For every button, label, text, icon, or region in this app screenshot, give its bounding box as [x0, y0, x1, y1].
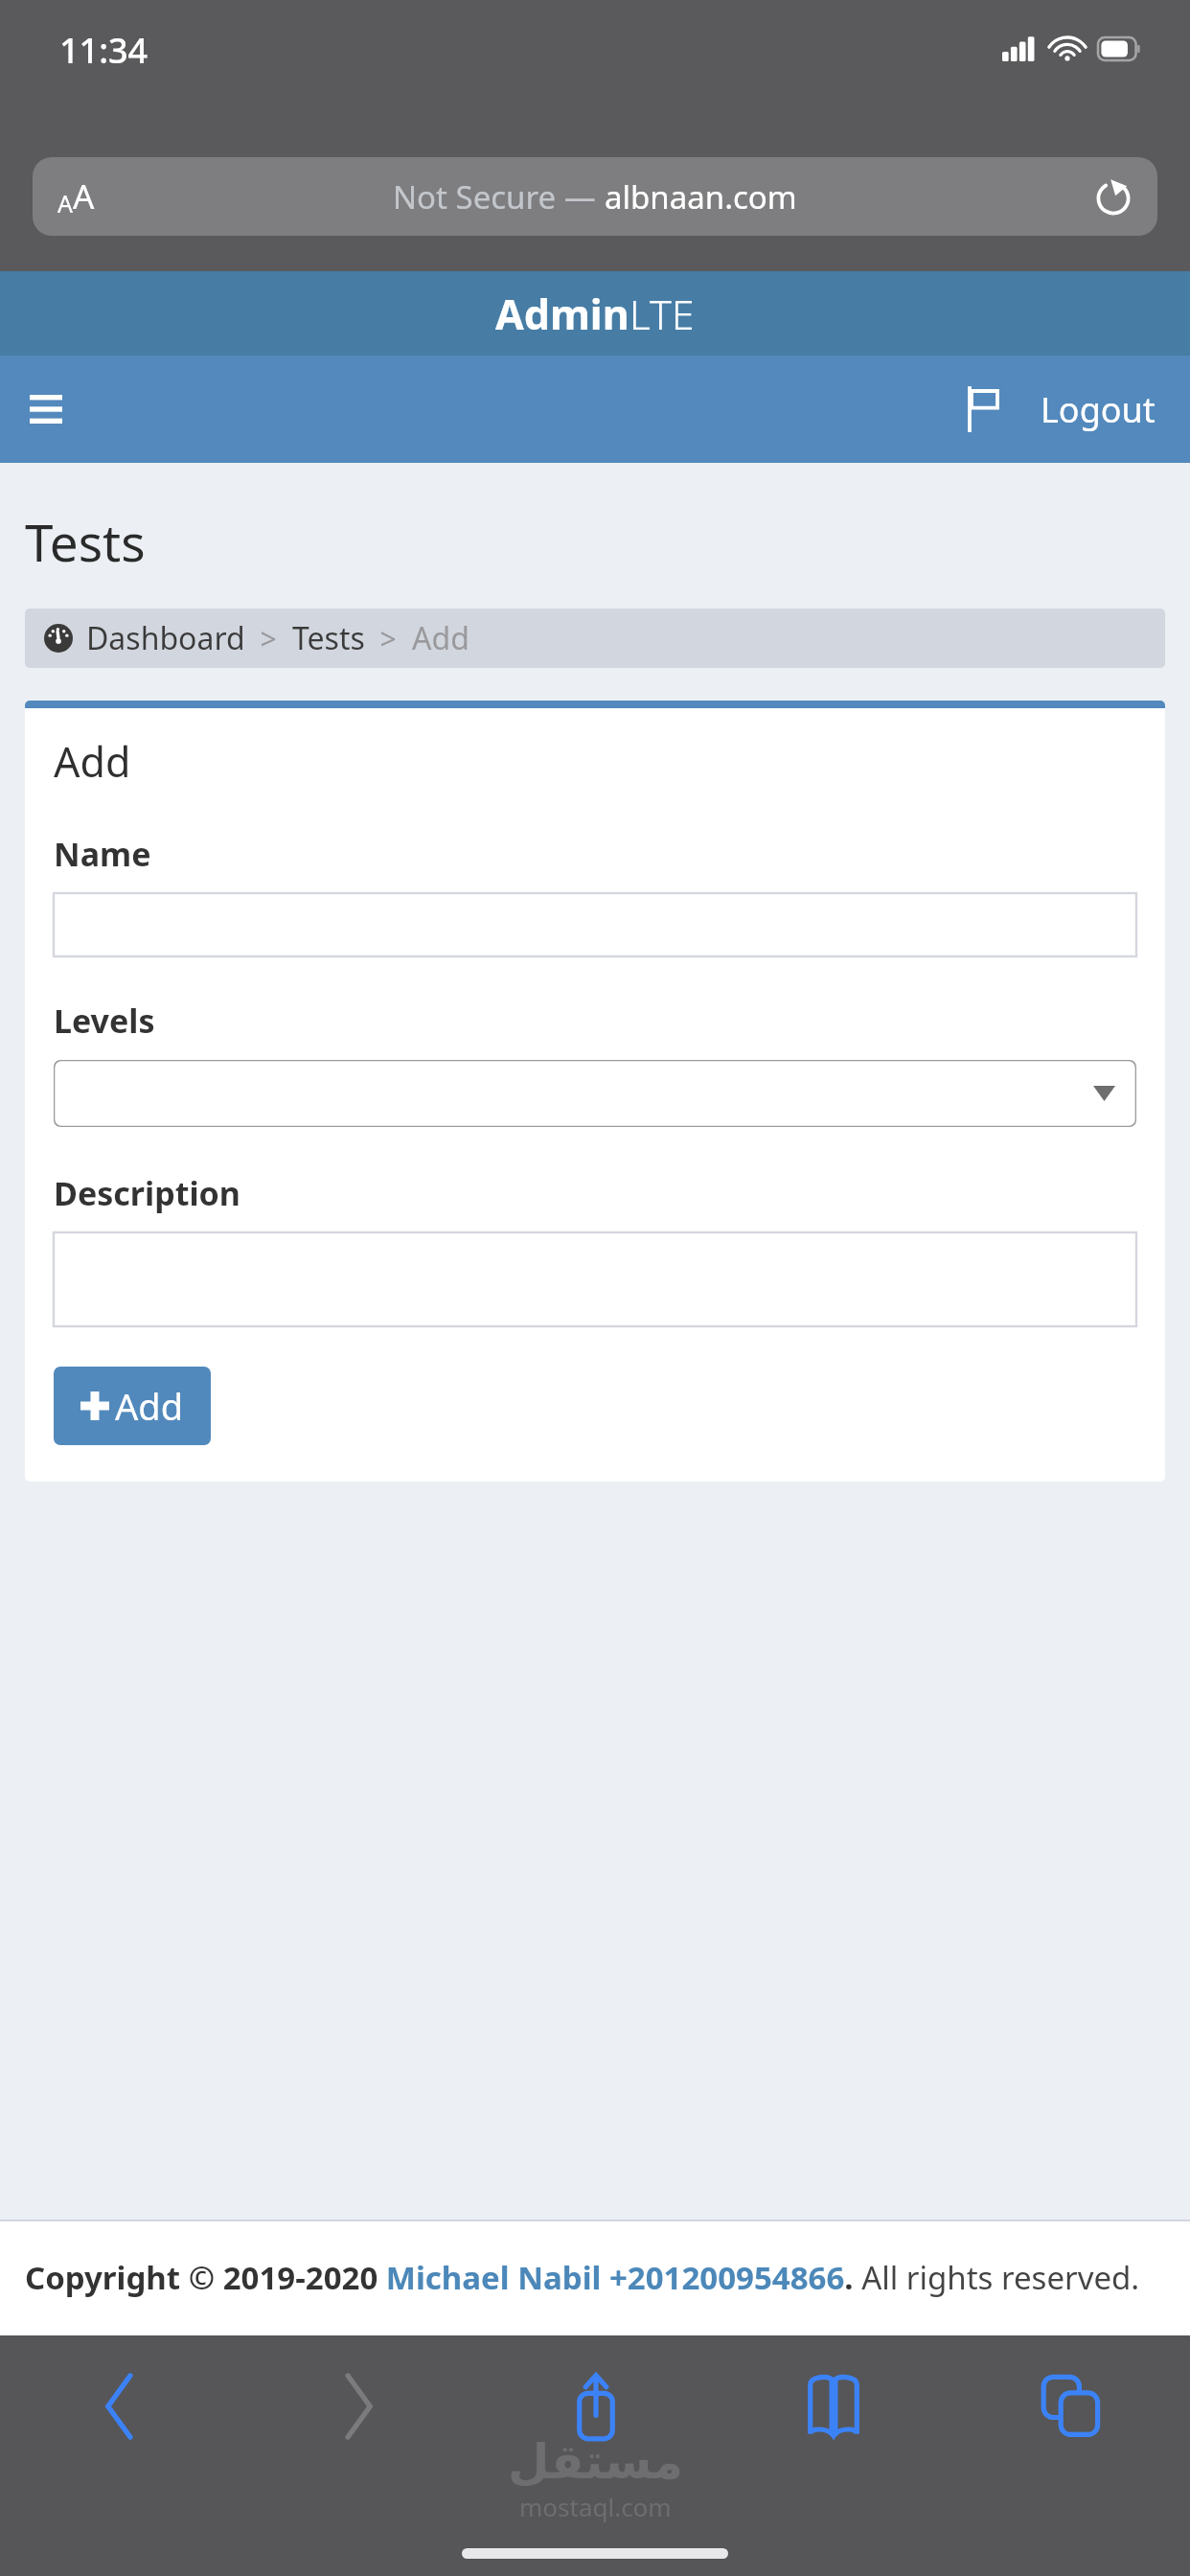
button[interactable]: A — [33, 157, 1157, 236]
button[interactable] — [54, 1232, 1136, 1326]
staticText: Add — [54, 733, 131, 790]
staticText: Tests — [25, 507, 146, 576]
button[interactable]: Add — [54, 1367, 211, 1445]
staticText: Logout — [1041, 386, 1156, 433]
button[interactable]: Share — [477, 2343, 715, 2470]
staticText: A — [57, 187, 73, 219]
button[interactable]: Bookmarks — [715, 2343, 952, 2470]
staticText: Not Secure — — [393, 175, 605, 218]
staticText: Levels — [54, 999, 155, 1043]
staticText: Add — [412, 617, 469, 659]
button[interactable]: Tests — [292, 617, 365, 659]
button[interactable]: Reload — [1094, 177, 1133, 216]
button[interactable]: Logout — [1041, 386, 1156, 433]
staticText: Add — [115, 1381, 184, 1431]
staticText: Name — [54, 832, 151, 876]
button[interactable]: Dashboard — [86, 617, 245, 659]
staticText: Copyright © 2019-2020 Michael Nabil +201… — [25, 2256, 1140, 2299]
button[interactable]: Back — [0, 2343, 239, 2470]
staticText: Dashboard — [86, 617, 245, 659]
staticText: 11:34 — [59, 27, 149, 74]
staticText: albnaan.com — [605, 175, 797, 218]
button[interactable]: Language — [941, 367, 1025, 451]
button[interactable]: Tabs — [952, 2343, 1190, 2470]
staticText: > — [245, 619, 292, 658]
staticText: Tests — [292, 617, 365, 659]
staticText: Description — [54, 1171, 240, 1215]
button[interactable]: Forward — [239, 2343, 477, 2470]
button[interactable]: Menu — [8, 371, 84, 448]
staticText: A — [73, 173, 95, 219]
staticText: AdminLTE — [495, 286, 695, 342]
staticText: mostaql.com — [519, 2490, 672, 2523]
staticText: > — [365, 619, 412, 658]
button[interactable] — [54, 893, 1136, 956]
button[interactable]: Levels dropdown — [54, 1060, 1136, 1127]
staticText: مستقل — [508, 2434, 683, 2490]
